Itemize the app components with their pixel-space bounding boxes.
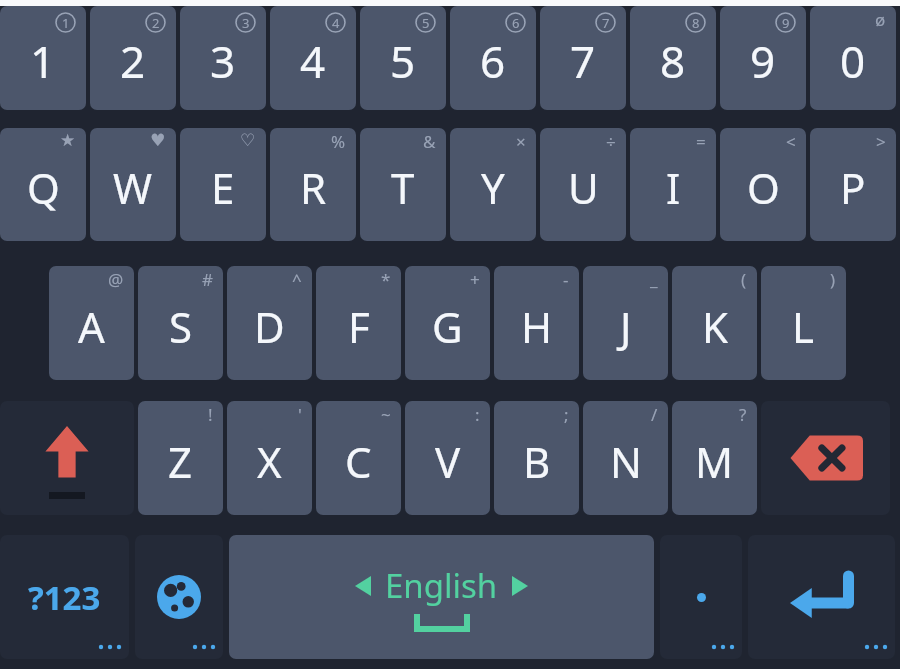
button[interactable]: C — [316, 401, 401, 515]
button[interactable]: 3 — [180, 6, 266, 110]
button[interactable]: Space — [229, 535, 654, 659]
staticText: 6 — [480, 31, 506, 91]
staticText: A — [78, 298, 105, 355]
button[interactable]: J — [583, 266, 668, 380]
staticText: 5 — [422, 14, 430, 32]
button[interactable]: I — [630, 128, 716, 241]
staticText: ♡ — [240, 130, 256, 150]
button[interactable]: 0 — [810, 6, 896, 110]
staticText: ? — [739, 403, 747, 426]
staticText: ?123 — [28, 575, 101, 620]
staticText: 1 — [62, 14, 70, 32]
staticText: ~ — [381, 403, 391, 426]
button[interactable]: D — [227, 266, 312, 380]
staticText: - — [563, 268, 569, 291]
button[interactable]: N — [583, 401, 668, 515]
staticText: ( — [741, 268, 747, 291]
staticText: # — [202, 268, 213, 291]
button[interactable]: A — [49, 266, 134, 380]
staticText: ÷ — [606, 130, 616, 153]
button[interactable]: L — [761, 266, 846, 380]
staticText: 4 — [332, 14, 340, 32]
button[interactable]: 4 — [270, 6, 356, 110]
button[interactable]: V — [405, 401, 490, 515]
staticText: U — [568, 159, 599, 216]
button[interactable]: U — [540, 128, 626, 241]
staticText: ø — [875, 8, 886, 31]
staticText: X — [257, 433, 282, 490]
staticText: @ — [108, 268, 124, 291]
button[interactable]: G — [405, 266, 490, 380]
staticText: Z — [168, 433, 193, 490]
button[interactable]: ?123 — [0, 535, 129, 659]
staticText: ; — [564, 403, 569, 426]
button[interactable]: S — [138, 266, 223, 380]
staticText: : — [475, 403, 480, 426]
staticText: 8 — [692, 14, 700, 32]
staticText: L — [792, 298, 815, 355]
button[interactable]: Z — [138, 401, 223, 515]
button[interactable]: 5 — [360, 6, 446, 110]
staticText: ♥ — [150, 130, 166, 150]
staticText: G — [432, 298, 463, 355]
button[interactable]: B — [494, 401, 579, 515]
button[interactable]: Q — [0, 128, 86, 241]
staticText: ) — [830, 268, 836, 291]
button[interactable]: 9 — [720, 6, 806, 110]
staticText: P — [840, 159, 866, 216]
staticText: 6 — [512, 14, 520, 32]
button[interactable]: O — [720, 128, 806, 241]
staticText: % — [331, 130, 346, 153]
staticText: 1 — [30, 31, 56, 91]
staticText: 9 — [782, 14, 790, 32]
staticText: E — [211, 159, 235, 216]
staticText: < — [786, 130, 796, 153]
staticText: J — [620, 298, 632, 355]
button[interactable]: X — [227, 401, 312, 515]
staticText: 2 — [152, 14, 160, 32]
staticText: T — [391, 159, 415, 216]
staticText: 9 — [750, 31, 776, 91]
button[interactable]: P — [810, 128, 896, 241]
button[interactable]: E — [180, 128, 266, 241]
button[interactable]: 1 — [0, 6, 86, 110]
button[interactable]: Y — [450, 128, 536, 241]
button[interactable]: 7 — [540, 6, 626, 110]
button[interactable]: Enter — [748, 535, 895, 659]
button[interactable]: T — [360, 128, 446, 241]
staticText: 3 — [242, 14, 250, 32]
button[interactable] — [660, 535, 742, 659]
staticText: W — [113, 159, 153, 216]
button[interactable]: Shift — [0, 401, 134, 515]
staticText: * — [381, 268, 391, 291]
button[interactable]: 2 — [90, 6, 176, 110]
staticText: 5 — [390, 31, 416, 91]
staticText: K — [702, 298, 728, 355]
staticText: F — [348, 298, 370, 355]
button[interactable]: K — [672, 266, 757, 380]
staticText: 4 — [300, 31, 326, 91]
staticText: 0 — [840, 31, 866, 91]
staticText: ' — [298, 403, 302, 426]
staticText: B — [523, 433, 551, 490]
staticText: 7 — [602, 14, 610, 32]
button[interactable]: F — [316, 266, 401, 380]
button[interactable]: W — [90, 128, 176, 241]
button[interactable]: M — [672, 401, 757, 515]
staticText: M — [695, 433, 734, 490]
button[interactable]: H — [494, 266, 579, 380]
staticText: 7 — [570, 31, 596, 91]
staticText: C — [345, 433, 372, 490]
staticText: ! — [208, 403, 213, 426]
staticText: Y — [481, 159, 505, 216]
button[interactable]: Backspace — [761, 401, 890, 515]
button[interactable]: 6 — [450, 6, 536, 110]
button[interactable]: Change keyboard language — [135, 535, 223, 659]
button[interactable]: R — [270, 128, 356, 241]
staticText: 3 — [210, 31, 236, 91]
staticText: R — [300, 159, 327, 216]
staticText: > — [876, 130, 886, 153]
button[interactable]: 8 — [630, 6, 716, 110]
staticText: Q — [27, 159, 60, 216]
staticText: × — [516, 130, 526, 153]
